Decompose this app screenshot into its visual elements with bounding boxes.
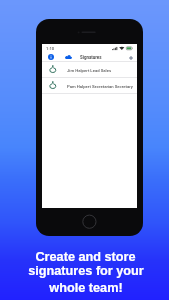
button[interactable]: Jim Halpert Lead Sales xyxy=(42,62,137,78)
staticText: signatures for your xyxy=(28,264,144,278)
button[interactable]: Add signature xyxy=(127,54,135,62)
staticText: Jim Halpert Lead Sales xyxy=(67,68,112,73)
staticText: 1:10 xyxy=(46,46,55,51)
button[interactable]: Info xyxy=(47,53,54,60)
staticText: whole team! xyxy=(49,281,123,295)
button[interactable]: Pam Halpert Secretarian Secretary xyxy=(42,78,137,94)
staticText: Create and store xyxy=(35,250,136,264)
staticText: Pam Halpert Secretarian Secretary xyxy=(67,84,133,89)
staticText: Signatures xyxy=(80,55,102,60)
